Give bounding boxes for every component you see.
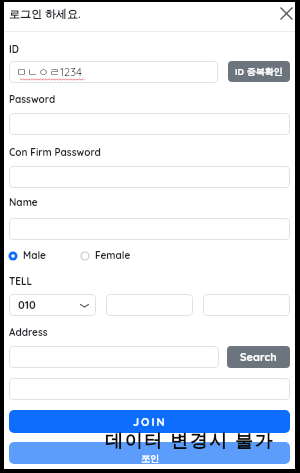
staticText: 쪼인 — [141, 453, 159, 464]
staticText: Name — [9, 196, 38, 209]
staticText: 010 — [18, 298, 36, 312]
button[interactable]: JOIN — [9, 410, 290, 433]
button[interactable]: Male — [8, 249, 46, 262]
staticText: ID 중복확인 — [235, 66, 283, 78]
button[interactable] — [9, 378, 290, 400]
button[interactable] — [9, 113, 290, 135]
button[interactable]: 쪼인 — [9, 442, 290, 464]
button[interactable]: ID 중복확인 — [228, 61, 290, 82]
button[interactable]: Close — [275, 2, 297, 24]
button[interactable]: Search — [227, 346, 290, 368]
staticText: Password — [9, 93, 56, 106]
staticText: Search — [240, 350, 277, 364]
staticText: JOIN — [133, 415, 167, 429]
staticText: 로그인 하세요. — [9, 7, 81, 21]
button[interactable]: Female — [80, 249, 131, 262]
staticText: 데이터 변경시 불가 — [105, 429, 275, 452]
button[interactable] — [9, 218, 290, 240]
button[interactable] — [106, 294, 193, 316]
button[interactable]: ㅁㄴㅇㄹ1234 — [9, 61, 218, 83]
staticText: ID — [9, 43, 19, 56]
button[interactable] — [9, 166, 290, 188]
staticText: Con Firm Password — [9, 146, 101, 159]
button[interactable]: 010 — [9, 294, 96, 316]
button[interactable] — [203, 294, 290, 316]
staticText: Male — [23, 249, 46, 262]
staticText: Address — [9, 326, 48, 339]
staticText: TELL — [9, 275, 33, 288]
staticText: ㅁㄴㅇㄹ1234 — [16, 65, 82, 79]
staticText: Female — [95, 249, 131, 262]
button[interactable] — [9, 346, 219, 368]
